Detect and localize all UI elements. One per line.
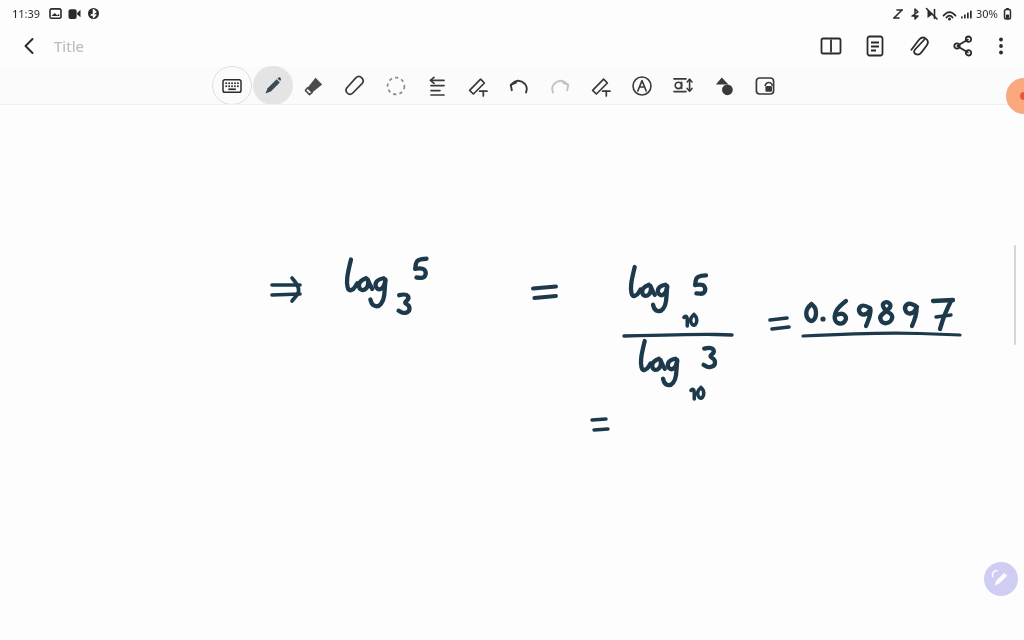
staticText: 30% <box>976 6 998 21</box>
button[interactable]: Convert to text <box>458 66 498 105</box>
button[interactable]: Reading view <box>812 27 850 65</box>
staticText: 11:39 <box>12 6 41 21</box>
button[interactable]: Notes list <box>856 27 894 65</box>
button[interactable]: Highlighter <box>294 66 334 105</box>
button[interactable]: Align <box>417 66 457 105</box>
button[interactable]: Pen colour <box>1006 78 1024 114</box>
button[interactable]: Shapes <box>704 66 744 105</box>
button[interactable]: Undo <box>499 66 539 105</box>
button[interactable]: Back <box>14 31 44 61</box>
button[interactable]: Pen <box>253 66 293 105</box>
button[interactable]: Lasso select <box>376 66 416 105</box>
button[interactable]: Keyboard <box>212 66 252 105</box>
button[interactable]: More options <box>984 29 1018 63</box>
button[interactable]: Text size <box>663 66 703 105</box>
staticText: Title <box>54 36 84 56</box>
button[interactable]: Text style <box>622 66 662 105</box>
button[interactable]: Share <box>944 27 982 65</box>
button[interactable]: Text tool <box>581 66 621 105</box>
button[interactable]: Handwriting pen <box>984 562 1018 596</box>
button[interactable]: Lock <box>745 66 785 105</box>
button[interactable]: Redo <box>540 66 580 105</box>
button[interactable]: Attach file <box>900 27 938 65</box>
button[interactable]: Eraser <box>335 66 375 105</box>
button[interactable]: Title <box>52 36 86 56</box>
